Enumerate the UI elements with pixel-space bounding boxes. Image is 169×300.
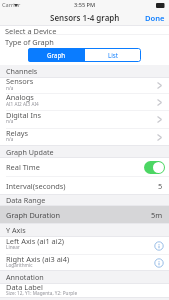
button[interactable]: Data Label: [0, 284, 169, 297]
staticText: Y Axis: [6, 225, 26, 235]
button[interactable]: Analogs: [0, 94, 169, 110]
staticText: AI1 AI2 AI3 AI4: [6, 101, 39, 107]
staticText: Graph: [47, 51, 66, 59]
button[interactable]: Info about left axis: [153, 240, 165, 252]
staticText: Annotation: [6, 272, 44, 282]
staticText: Analogs: [6, 92, 34, 102]
button[interactable]: Real Time: [0, 158, 169, 176]
staticText: Real Time: [6, 162, 144, 172]
button[interactable]: Sensors: [0, 78, 169, 93]
staticText: 5m: [151, 210, 163, 220]
button[interactable]: Select a Device: [0, 26, 169, 34]
button[interactable]: List: [85, 48, 141, 62]
staticText: Sensors 1-4 graph: [50, 12, 120, 23]
button[interactable]: Info about right axis: [153, 257, 165, 269]
staticText: Linear: [6, 244, 20, 250]
staticText: 3:55 PM: [74, 1, 96, 9]
button[interactable]: Digital Ins: [0, 111, 169, 128]
staticText: Right Axis (ai3 ai4): [6, 254, 70, 264]
staticText: Done: [145, 13, 165, 23]
staticText: Sensors: [6, 76, 34, 86]
staticText: Channels: [6, 66, 38, 76]
staticText: Left Axis (ai1 ai2): [6, 236, 65, 246]
staticText: Relays: [6, 128, 29, 138]
button[interactable]: Relays: [0, 129, 169, 145]
staticText: n/a: [6, 136, 14, 142]
button[interactable]: Graph: [28, 48, 84, 62]
staticText: Digital Ins: [6, 110, 42, 120]
button[interactable]: Type of Graph: [0, 35, 169, 48]
staticText: Data Range: [6, 195, 46, 205]
button[interactable]: Right Axis (ai3 ai4): [0, 255, 169, 270]
staticText: Size: 12, Y1: Magenta, Y2: Purple: [6, 290, 78, 296]
staticText: Graph Duration: [6, 210, 151, 220]
staticText: List: [108, 51, 119, 59]
staticText: Graph Update: [6, 147, 54, 157]
button[interactable]: Interval(seconds): [0, 177, 169, 194]
button[interactable]: Left Axis (ai1 ai2): [0, 237, 169, 254]
staticText: Data Label: [6, 282, 43, 292]
staticText: Type of Graph: [5, 37, 54, 47]
staticText: Interval(seconds): [6, 181, 158, 191]
staticText: 5: [158, 181, 163, 191]
staticText: n/a: [6, 85, 14, 91]
button[interactable]: Done: [141, 11, 169, 25]
staticText: n/a: [6, 118, 14, 124]
staticText: Logarithmic: [6, 262, 33, 268]
staticText: Carrier: [2, 1, 21, 9]
staticText: Select a Device: [5, 26, 57, 34]
button[interactable]: Graph Duration: [0, 206, 169, 223]
